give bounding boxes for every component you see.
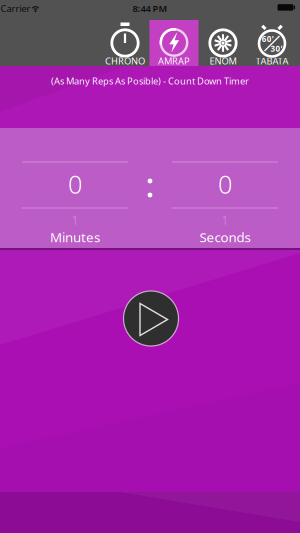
staticText: AMRAP [158, 55, 190, 67]
staticText: TABATA [255, 55, 288, 67]
button[interactable]: Minutes [22, 152, 128, 226]
staticText: 1 [221, 212, 228, 228]
staticText: 30' [270, 43, 282, 54]
staticText: Minutes [50, 228, 100, 246]
staticText: 0 [218, 167, 232, 201]
button[interactable]: Start [122, 290, 179, 347]
button[interactable]: CHRONO [100, 20, 149, 66]
staticText: 8:44 PM [132, 2, 167, 15]
staticText: ENOM [209, 55, 236, 67]
staticText: 0 [68, 167, 82, 201]
button[interactable]: AMRAP [149, 20, 198, 66]
staticText: 1 [71, 212, 78, 228]
button[interactable]: Seconds [172, 152, 278, 226]
staticText: CHRONO [105, 55, 145, 67]
staticText: Seconds [199, 228, 250, 246]
staticText: (As Many Reps As Posible) - Count Down T… [51, 75, 249, 87]
button[interactable]: ENOM [198, 20, 247, 66]
button[interactable]: 60' [247, 20, 296, 66]
staticText: Carrier [0, 2, 30, 15]
staticText: 60' [262, 34, 274, 44]
